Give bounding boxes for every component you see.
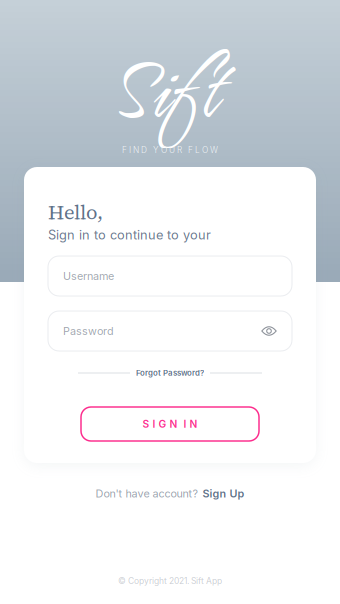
staticText: © Copyright 2021. Sift App: [118, 576, 222, 586]
staticText: Sign in to continue to your: [48, 227, 211, 242]
staticText: Don't have account?: [95, 487, 198, 500]
staticText: Hello,: [48, 199, 103, 226]
staticText: F I N D Y O U R F L O W: [122, 145, 218, 155]
button[interactable]: S I G N I N: [81, 407, 259, 441]
button[interactable]: Show password: [258, 320, 280, 342]
staticText: Forgot Password?: [136, 368, 204, 378]
staticText: Sign Up: [202, 487, 244, 500]
staticText: S I G N I N: [142, 418, 197, 430]
staticText: Username: [63, 269, 114, 283]
button[interactable]: Don't have account?: [95, 487, 244, 500]
staticText: Password: [63, 324, 114, 338]
button[interactable]: Forgot Password?: [78, 365, 262, 381]
staticText: Sift: [110, 31, 216, 153]
